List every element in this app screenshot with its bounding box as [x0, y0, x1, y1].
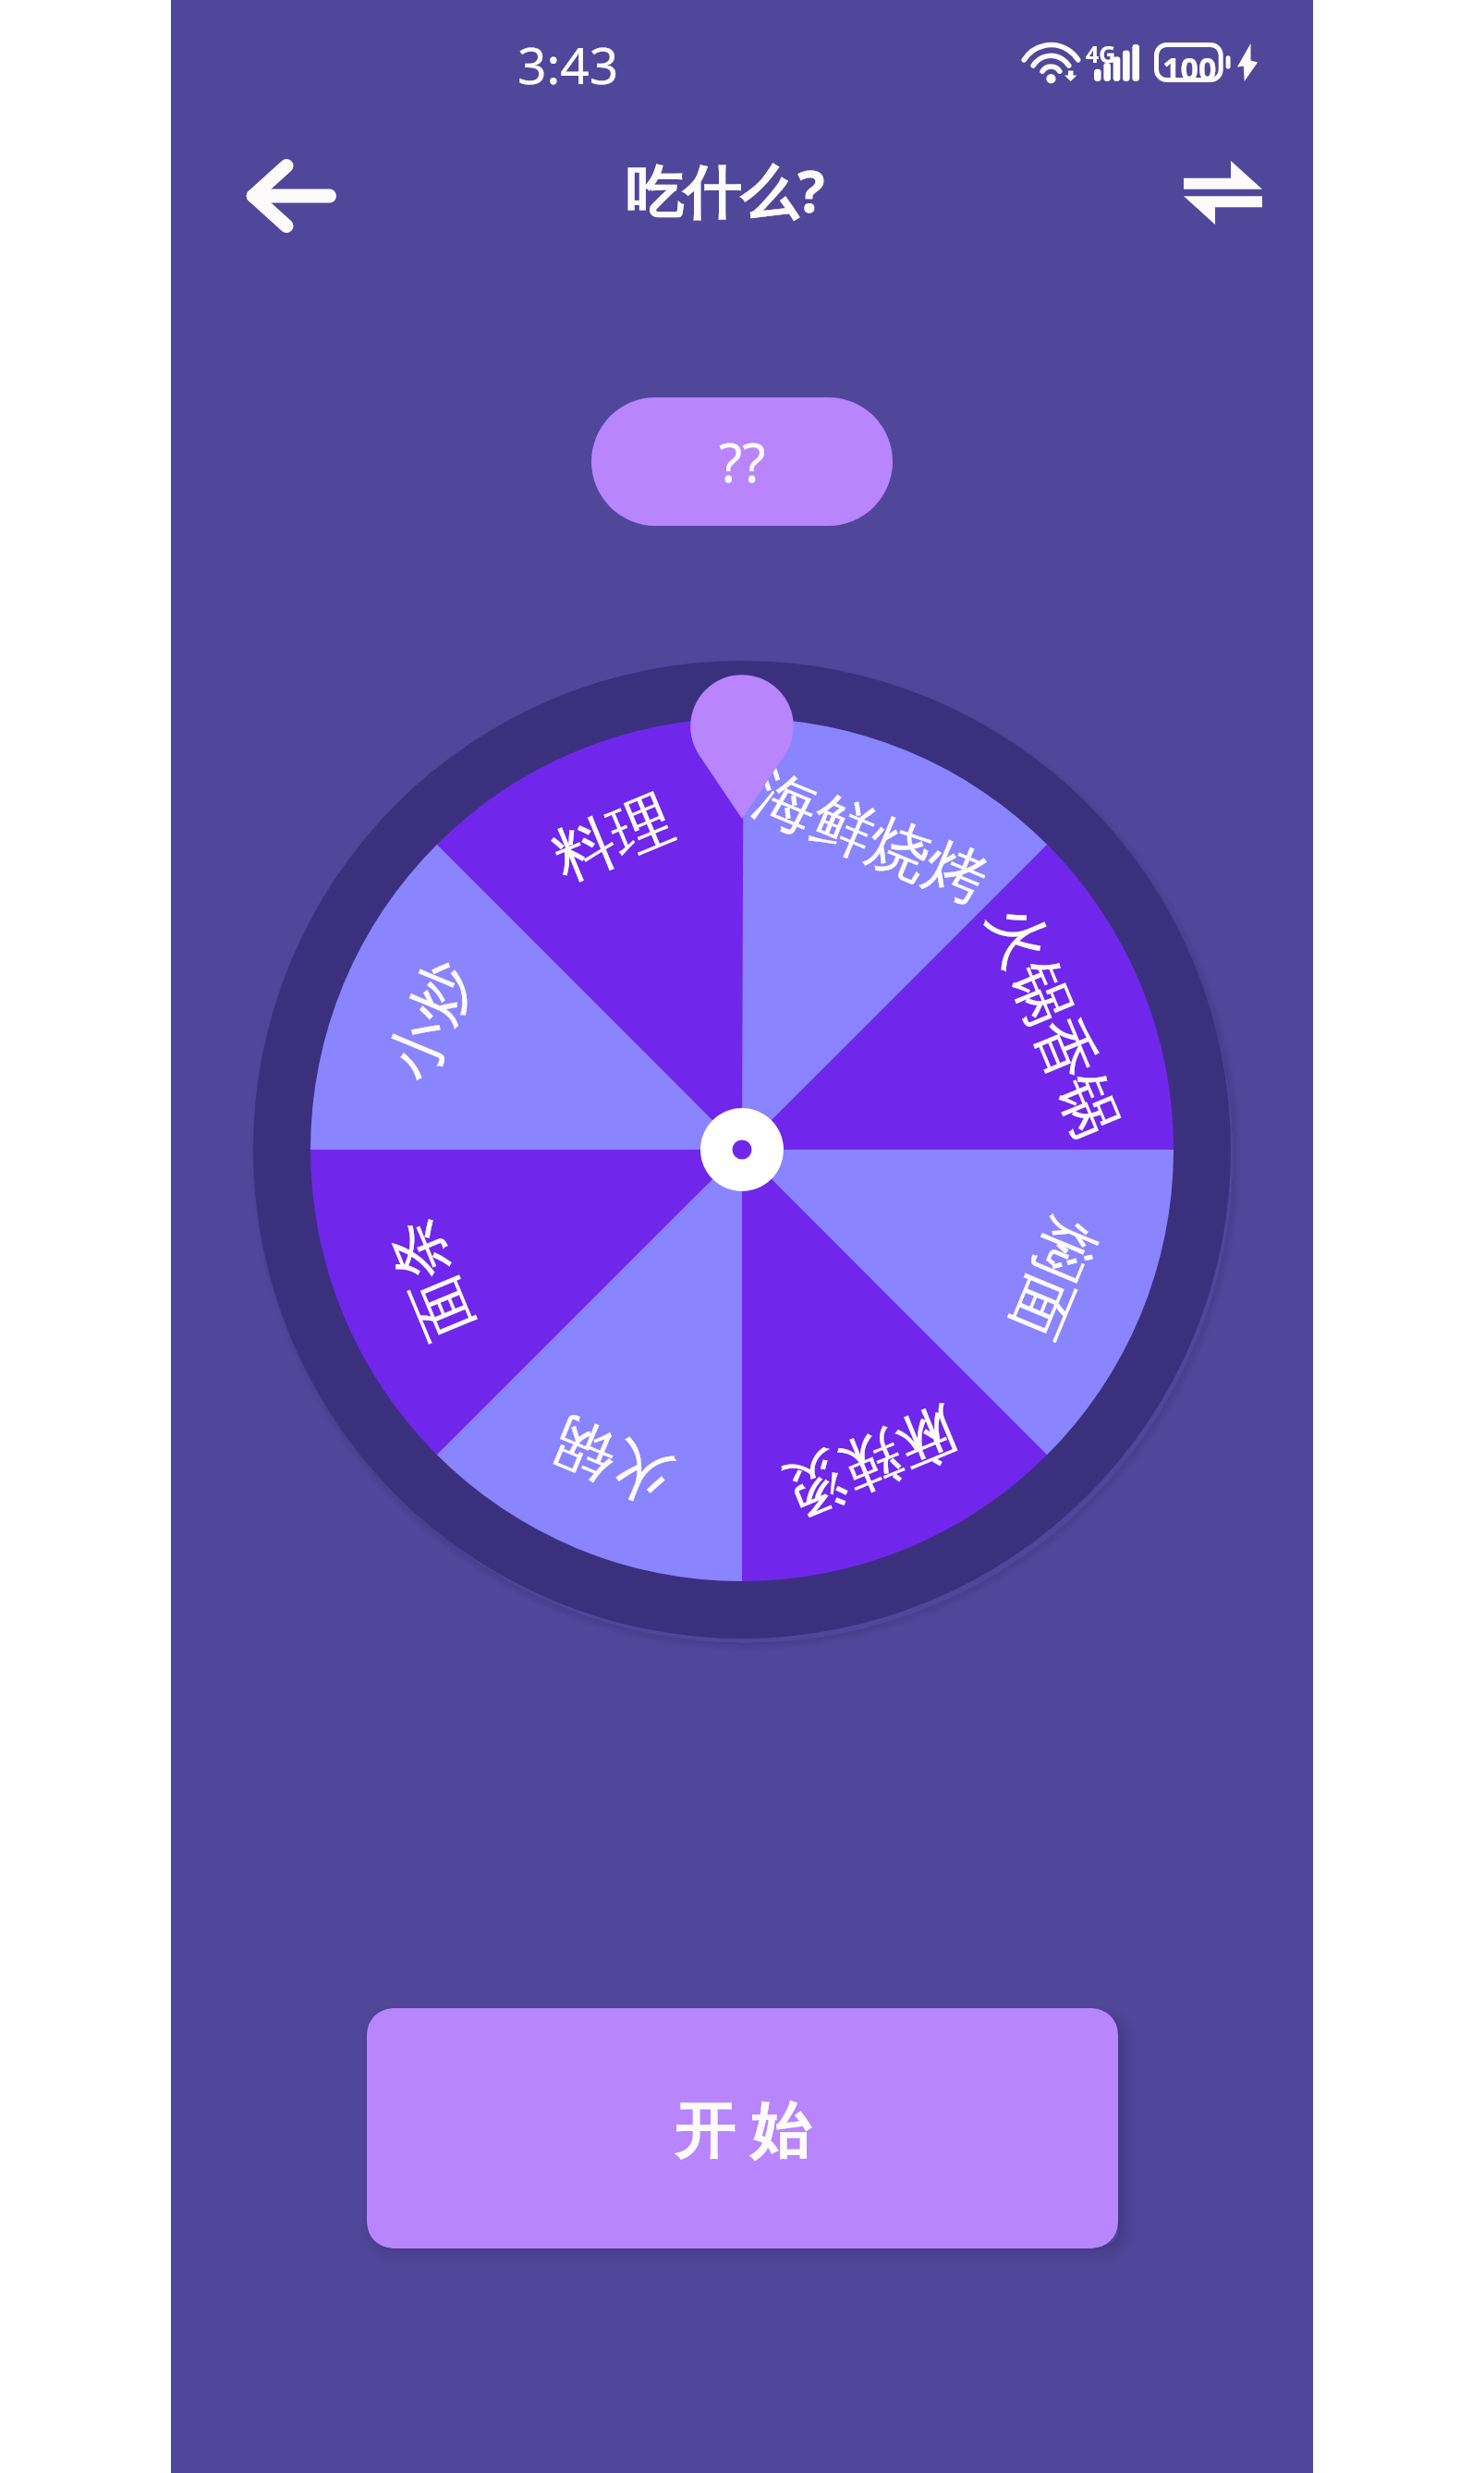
button[interactable]: Back [234, 139, 348, 253]
button[interactable]: Swap order [1165, 135, 1280, 250]
staticText: 4G [1086, 38, 1116, 69]
button[interactable]: ?? [591, 397, 893, 526]
staticText: 3:43 [517, 30, 619, 99]
button[interactable]: 开 始 [367, 2008, 1118, 2248]
staticText: 开 始 [675, 2088, 810, 2170]
staticText: 吃什么? [626, 152, 825, 230]
staticText: ?? [719, 425, 766, 498]
staticText: 100 [1162, 47, 1217, 90]
button[interactable]: Spin the wheel [253, 661, 1231, 1639]
